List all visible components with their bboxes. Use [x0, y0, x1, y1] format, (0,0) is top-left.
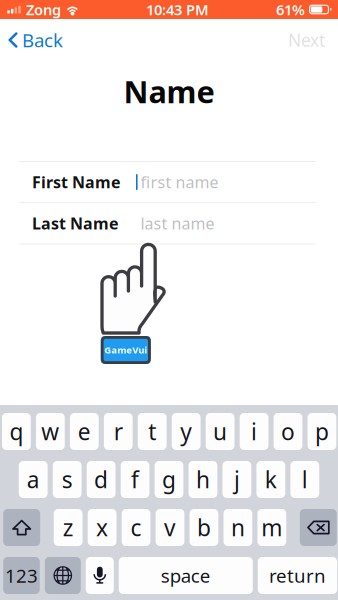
staticText: Next [288, 28, 325, 51]
staticText: j [234, 464, 240, 494]
staticText: q [9, 416, 23, 446]
staticText: return [269, 563, 326, 588]
staticText: space [161, 563, 211, 588]
button[interactable]: First Name [0, 162, 338, 202]
staticText: first name [141, 171, 219, 193]
button[interactable]: return [258, 557, 337, 594]
button[interactable]: g [155, 461, 183, 498]
staticText: f [131, 464, 139, 494]
button[interactable]: l [290, 461, 319, 498]
button[interactable]: j [222, 461, 251, 498]
button[interactable]: r [104, 413, 133, 450]
staticText: 61% [276, 0, 305, 19]
button[interactable]: s [53, 461, 82, 498]
staticText: l [302, 464, 308, 494]
button[interactable]: i [240, 413, 268, 450]
staticText: s [62, 464, 73, 494]
staticText: b [197, 512, 211, 542]
button[interactable]: q [2, 413, 31, 450]
staticText: Back [22, 28, 63, 52]
button[interactable]: v [156, 509, 184, 546]
staticText: Last Name [32, 213, 119, 234]
staticText: e [78, 416, 91, 446]
staticText: 10:43 PM [146, 0, 209, 19]
button[interactable]: t [138, 413, 167, 450]
staticText: g [162, 464, 176, 494]
button[interactable]: x [88, 509, 116, 546]
staticText: h [196, 464, 210, 494]
staticText: n [231, 512, 245, 542]
button[interactable]: 123 [3, 557, 40, 594]
staticText: y [180, 416, 192, 446]
staticText: last name [141, 213, 215, 234]
staticText: 123 [5, 563, 38, 588]
staticText: o [281, 416, 295, 446]
button[interactable]: o [274, 413, 302, 450]
staticText: x [96, 512, 108, 542]
button[interactable]: Dictate [86, 557, 114, 594]
button[interactable]: a [19, 461, 48, 498]
button[interactable]: e [70, 413, 99, 450]
button[interactable]: Last Name [0, 203, 338, 244]
button[interactable]: f [121, 461, 149, 498]
staticText: w [41, 416, 59, 446]
staticText: r [114, 416, 123, 446]
staticText: Name [123, 71, 214, 112]
button[interactable]: d [87, 461, 115, 498]
button[interactable]: w [36, 413, 65, 450]
button[interactable]: Back [0, 24, 73, 56]
staticText: p [315, 416, 329, 446]
staticText: t [148, 416, 156, 446]
staticText: First Name [32, 171, 121, 193]
staticText: a [27, 464, 40, 494]
button[interactable]: Shift [3, 509, 40, 546]
staticText: d [94, 464, 108, 494]
button[interactable]: c [122, 509, 150, 546]
staticText: c [131, 512, 142, 542]
staticText: Zong [26, 0, 61, 19]
button[interactable]: n [223, 509, 252, 546]
button[interactable]: Next keyboard [45, 557, 81, 594]
button[interactable]: Delete [300, 509, 337, 546]
staticText: k [265, 464, 277, 494]
button[interactable]: h [189, 461, 217, 498]
staticText: v [164, 512, 176, 542]
button[interactable]: space [119, 557, 253, 594]
staticText: GameVui [104, 344, 147, 356]
staticText: u [213, 416, 227, 446]
staticText: m [261, 512, 282, 542]
button[interactable]: z [54, 509, 83, 546]
button[interactable]: u [206, 413, 234, 450]
staticText: z [63, 512, 74, 542]
button[interactable]: m [257, 509, 286, 546]
button[interactable]: Next [278, 24, 338, 56]
button[interactable]: p [307, 413, 336, 450]
button[interactable]: b [190, 509, 218, 546]
staticText: i [251, 416, 257, 446]
button[interactable]: k [256, 461, 285, 498]
button[interactable]: y [172, 413, 201, 450]
